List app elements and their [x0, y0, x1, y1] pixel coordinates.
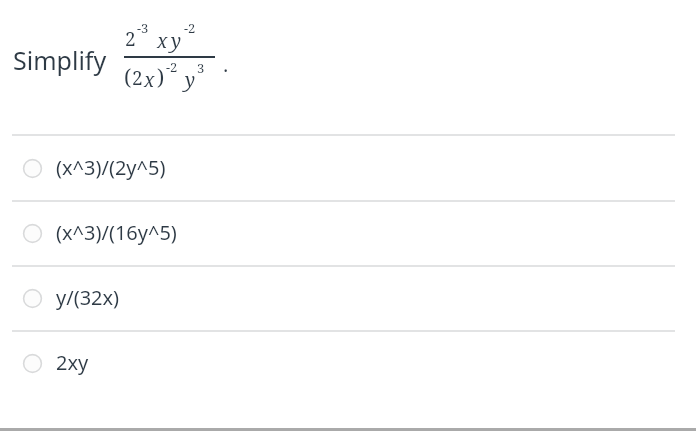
staticText: 2: [132, 65, 143, 91]
staticText: 2xy: [56, 349, 89, 376]
button[interactable]: (x^3)/(16y^5): [17, 218, 48, 249]
staticText: .: [223, 51, 229, 78]
staticText: 2: [125, 26, 136, 52]
button[interactable]: y/(32x): [17, 283, 48, 314]
staticText: -2: [166, 58, 178, 76]
button[interactable]: [0, 331, 696, 395]
staticText: ): [157, 63, 165, 92]
staticText: Simplify: [13, 43, 107, 77]
button[interactable]: (x^3)/(2y^5): [17, 153, 48, 184]
button[interactable]: [0, 201, 696, 265]
staticText: y/(32x): [56, 284, 120, 311]
button[interactable]: [0, 136, 696, 200]
staticText: (x^3)/(16y^5): [56, 219, 177, 246]
staticText: (: [124, 63, 132, 92]
staticText: x: [144, 67, 155, 93]
staticText: (x^3)/(2y^5): [56, 154, 166, 181]
staticText: x: [157, 28, 168, 54]
staticText: -3: [137, 19, 149, 37]
staticText: -2: [184, 19, 196, 37]
button[interactable]: [0, 266, 696, 330]
staticText: 3: [197, 59, 205, 77]
staticText: y: [171, 28, 182, 54]
staticText: y: [185, 67, 196, 93]
button[interactable]: 2xy: [17, 348, 48, 379]
